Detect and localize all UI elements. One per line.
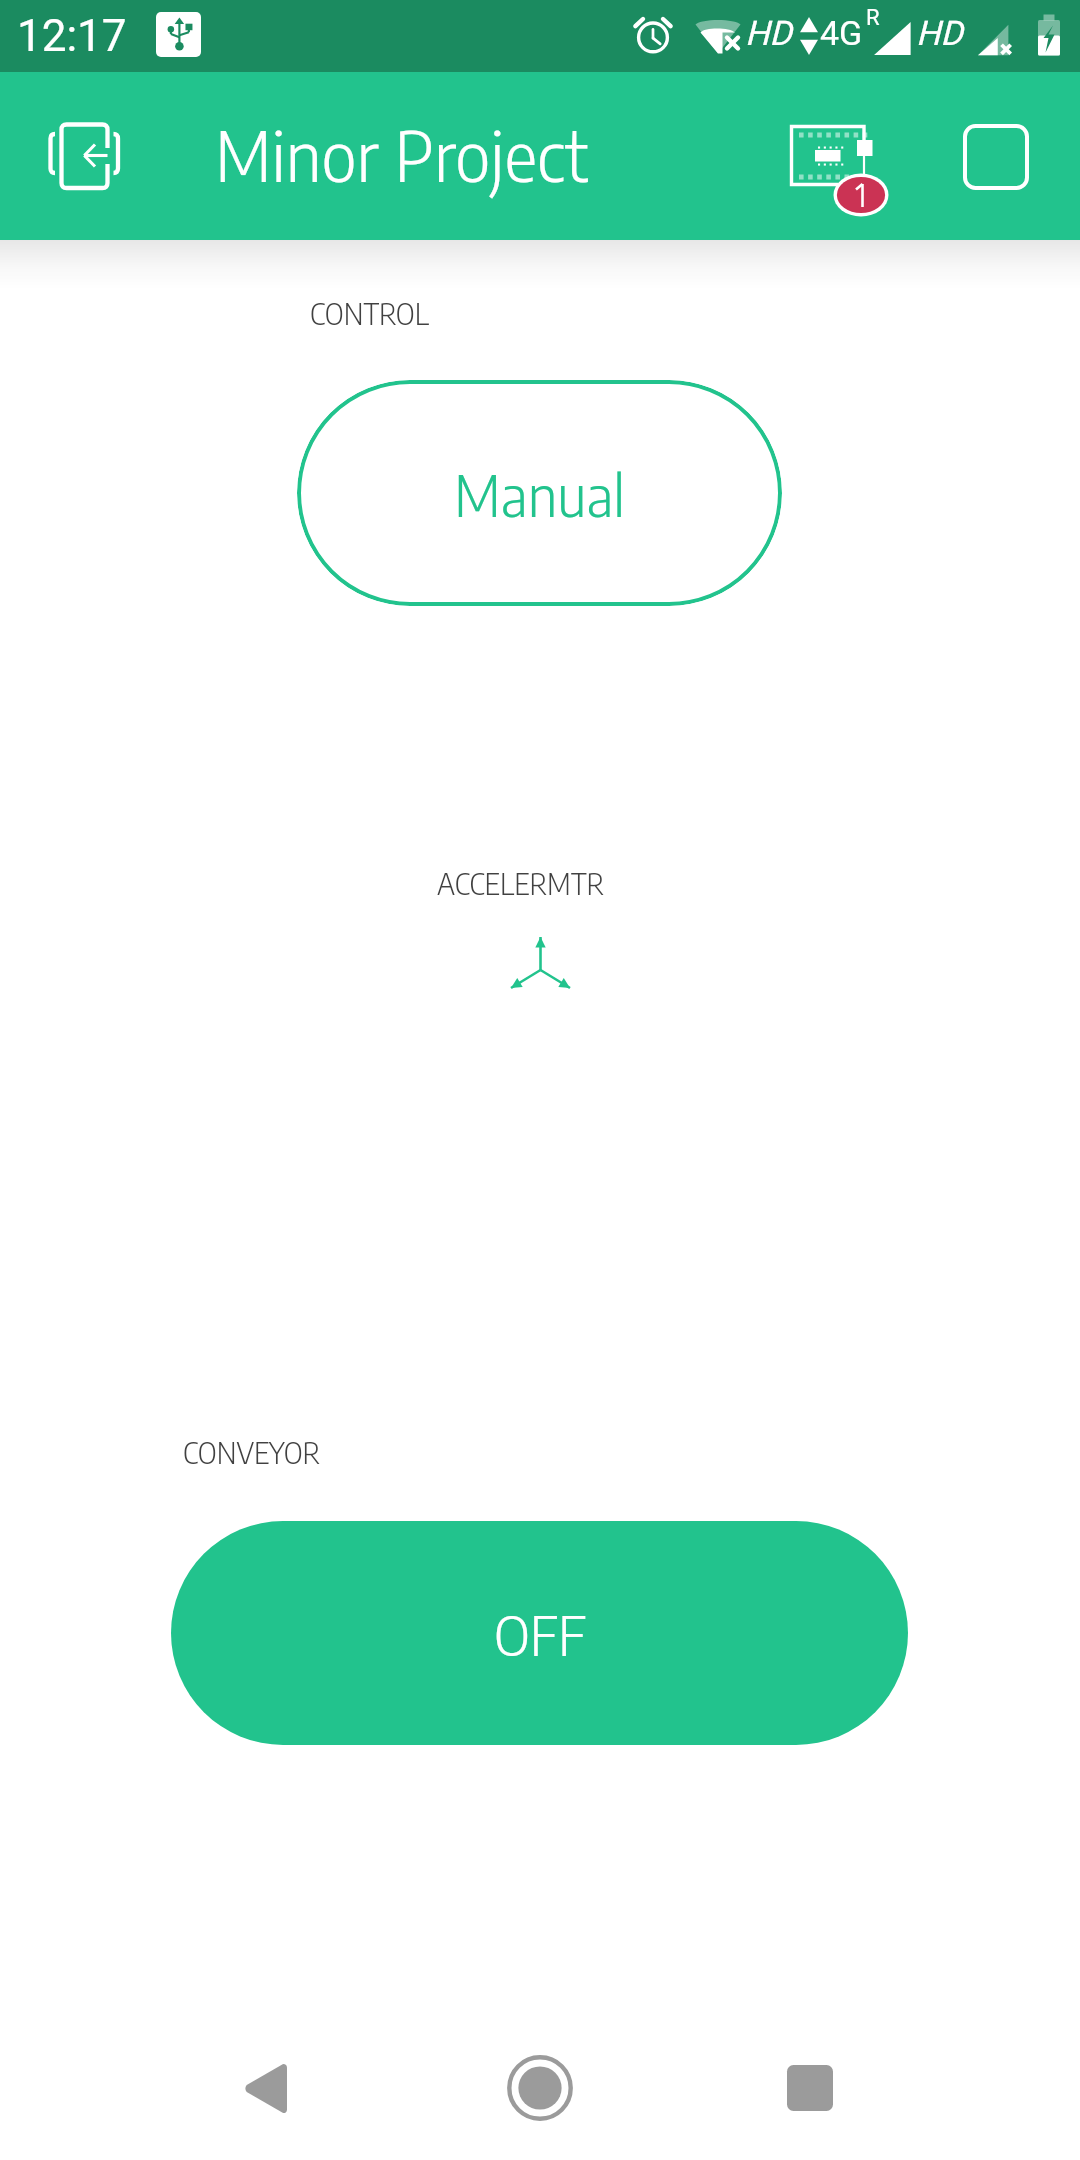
staticText: CONVEYOR: [183, 1434, 321, 1470]
button[interactable]: Stop: [944, 105, 1048, 209]
staticText: ACCELERMTR: [437, 865, 605, 901]
staticText: R: [866, 5, 880, 31]
button[interactable]: Devices: [770, 102, 910, 212]
button[interactable]: Home: [479, 2027, 601, 2149]
staticText: HD: [745, 13, 792, 53]
staticText: OFF: [494, 1599, 586, 1668]
staticText: HD: [916, 13, 963, 53]
button[interactable]: OFF: [171, 1521, 908, 1745]
staticText: 4G: [820, 13, 863, 53]
button[interactable]: Back: [204, 2027, 326, 2149]
button[interactable]: Exit: [35, 108, 135, 208]
button[interactable]: Manual: [297, 380, 782, 606]
staticText: CONTROL: [310, 295, 430, 331]
staticText: Manual: [454, 458, 626, 529]
staticText: Minor Project: [215, 111, 589, 197]
staticText: 12:17: [17, 10, 127, 62]
button[interactable]: Recents: [749, 2027, 871, 2149]
